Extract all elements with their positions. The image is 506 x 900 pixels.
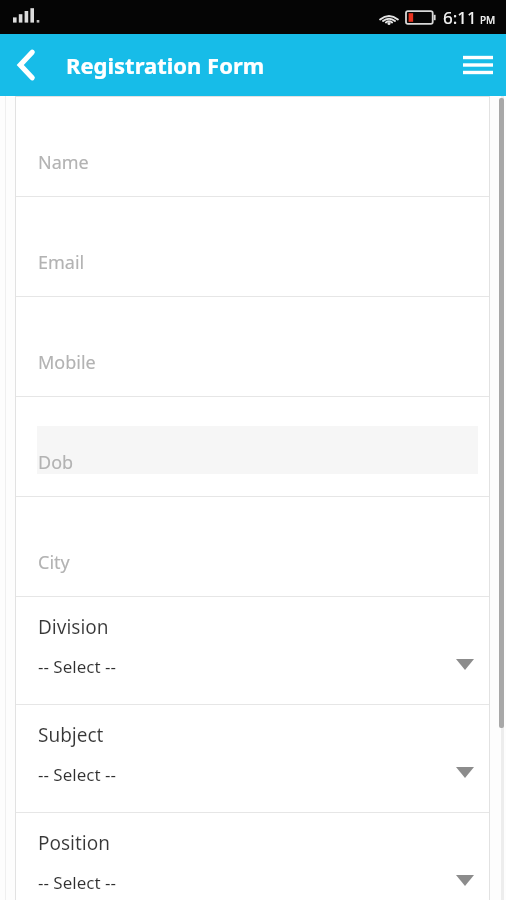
button[interactable]: Email	[15, 197, 490, 296]
staticText: Division	[38, 614, 109, 640]
button[interactable]: Position	[15, 813, 490, 900]
staticText: Name	[38, 150, 89, 175]
button[interactable]: Subject	[15, 705, 490, 812]
staticText: Position	[38, 830, 110, 856]
staticText: Subject	[38, 722, 104, 748]
button[interactable]: City	[15, 497, 490, 596]
staticText: -- Select --	[38, 763, 116, 786]
staticText: Dob	[38, 450, 74, 475]
button[interactable]: Back	[0, 34, 54, 96]
button[interactable]: Dob	[15, 397, 490, 496]
staticText: PM	[480, 13, 496, 27]
button[interactable]: Division	[15, 597, 490, 704]
staticText: Mobile	[38, 350, 96, 375]
staticText: 6:11	[443, 6, 477, 29]
button[interactable]: Name	[15, 97, 490, 196]
staticText: City	[38, 550, 70, 575]
staticText: -- Select --	[38, 871, 116, 894]
button[interactable]: Menu	[450, 34, 506, 96]
staticText: -- Select --	[38, 655, 116, 678]
button[interactable]: Mobile	[15, 297, 490, 396]
staticText: Registration Form	[66, 50, 265, 80]
staticText: Email	[38, 250, 85, 275]
